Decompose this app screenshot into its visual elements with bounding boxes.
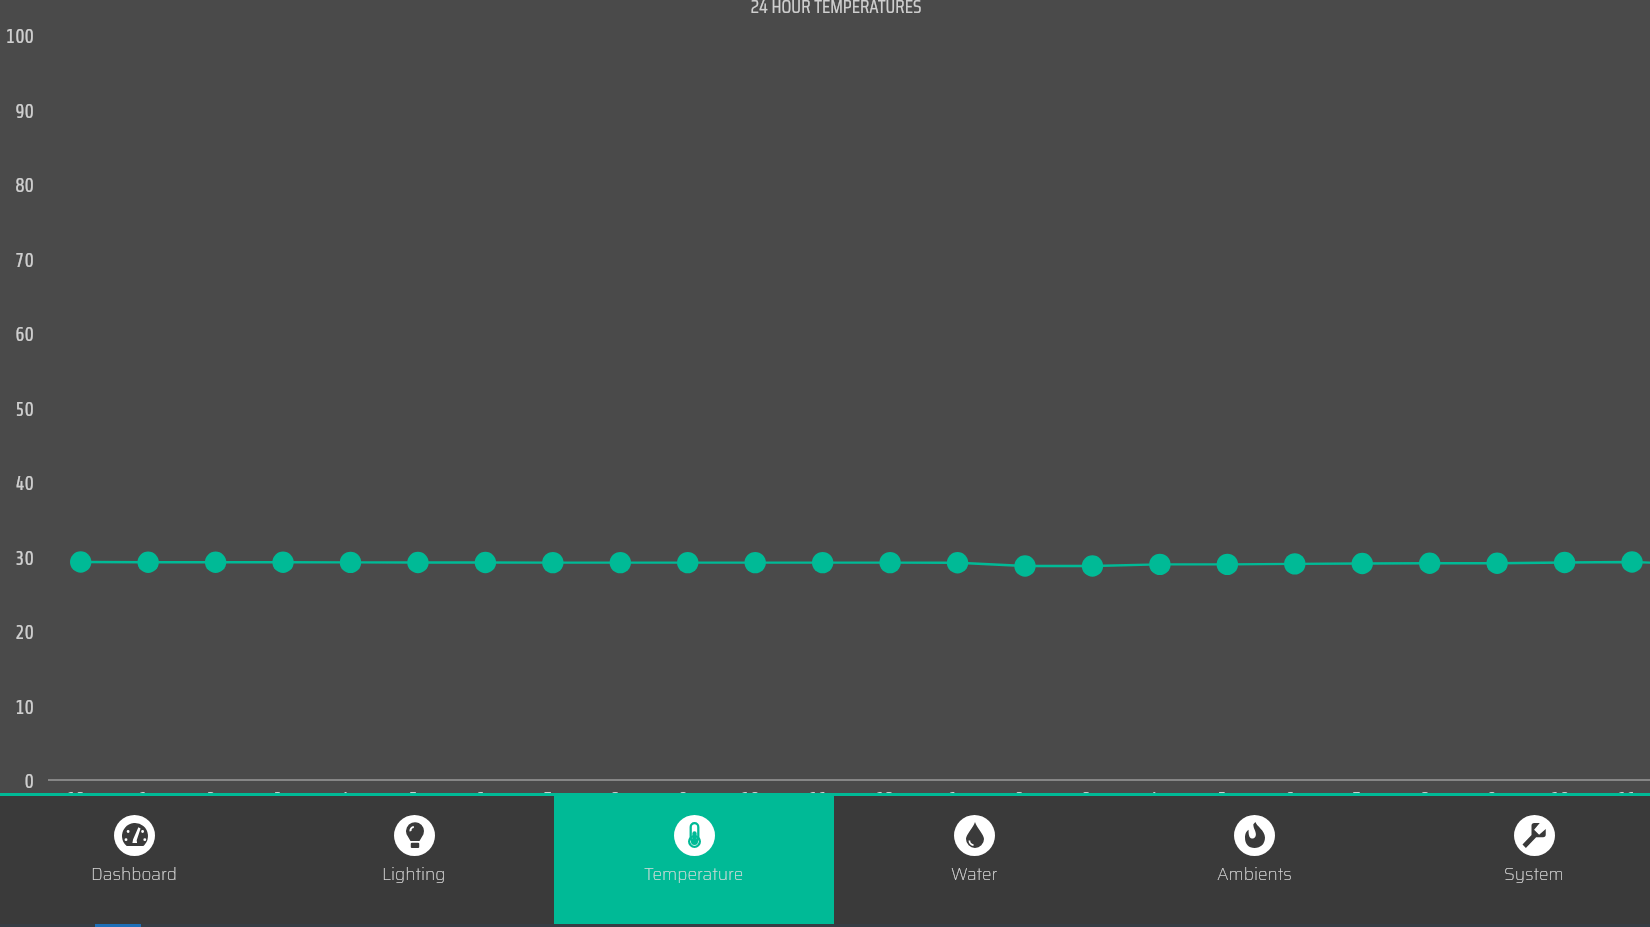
staticText: 0 bbox=[0, 770, 34, 793]
staticText: 3a bbox=[263, 788, 303, 811]
staticText: 12a bbox=[61, 788, 101, 811]
staticText: 5a bbox=[398, 788, 438, 811]
staticText: 2p bbox=[1005, 788, 1045, 811]
other: Dashboard bbox=[122, 823, 148, 846]
staticText: 8p bbox=[1410, 788, 1450, 811]
staticText: Lighting bbox=[382, 861, 446, 888]
staticText: System bbox=[1504, 861, 1564, 888]
staticText: 3p bbox=[1072, 788, 1112, 811]
staticText: 7a bbox=[533, 788, 573, 811]
other: Ambients bbox=[1245, 822, 1265, 848]
other: Lighting bbox=[406, 822, 424, 848]
button[interactable]: Dashboard bbox=[0, 793, 274, 924]
staticText: 70 bbox=[0, 249, 34, 272]
staticText: 11p bbox=[1612, 788, 1650, 811]
staticText: 10 bbox=[0, 696, 34, 719]
staticText: 11a bbox=[803, 788, 843, 811]
staticText: Ambients bbox=[1217, 861, 1292, 888]
staticText: 30 bbox=[0, 547, 34, 570]
staticText: 80 bbox=[0, 174, 34, 197]
staticText: Water bbox=[951, 861, 998, 888]
staticText: 60 bbox=[0, 323, 34, 346]
staticText: 20 bbox=[0, 621, 34, 644]
staticText: 24 HOUR TEMPERATURES bbox=[11, 0, 1650, 21]
staticText: 50 bbox=[0, 398, 34, 421]
staticText: 10p bbox=[1545, 788, 1585, 811]
button[interactable]: Water bbox=[834, 793, 1114, 924]
button[interactable]: Ambients bbox=[1114, 793, 1394, 924]
staticText: 9a bbox=[668, 788, 708, 811]
other: Temperature bbox=[688, 822, 701, 848]
button[interactable]: Temperature bbox=[554, 793, 834, 924]
button[interactable]: System bbox=[1394, 793, 1650, 924]
staticText: 2a bbox=[196, 788, 236, 811]
staticText: 6p bbox=[1275, 788, 1315, 811]
staticText: 7p bbox=[1342, 788, 1382, 811]
staticText: 1a bbox=[128, 788, 168, 811]
staticText: 9p bbox=[1477, 788, 1517, 811]
button[interactable]: Lighting bbox=[274, 793, 554, 924]
staticText: 6a bbox=[465, 788, 505, 811]
staticText: 90 bbox=[0, 100, 34, 123]
staticText: 100 bbox=[0, 25, 34, 48]
other: Water bbox=[966, 822, 984, 848]
other: System bbox=[1522, 822, 1547, 848]
staticText: Dashboard bbox=[91, 861, 177, 888]
staticText: 1p bbox=[938, 788, 978, 811]
staticText: 4p bbox=[1140, 788, 1180, 811]
staticText: 8a bbox=[600, 788, 640, 811]
staticText: 5p bbox=[1207, 788, 1247, 811]
staticText: 4a bbox=[331, 788, 371, 811]
staticText: Temperature bbox=[644, 861, 744, 888]
staticText: 10a bbox=[735, 788, 775, 811]
staticText: 12p bbox=[870, 788, 910, 811]
staticText: 40 bbox=[0, 472, 34, 495]
